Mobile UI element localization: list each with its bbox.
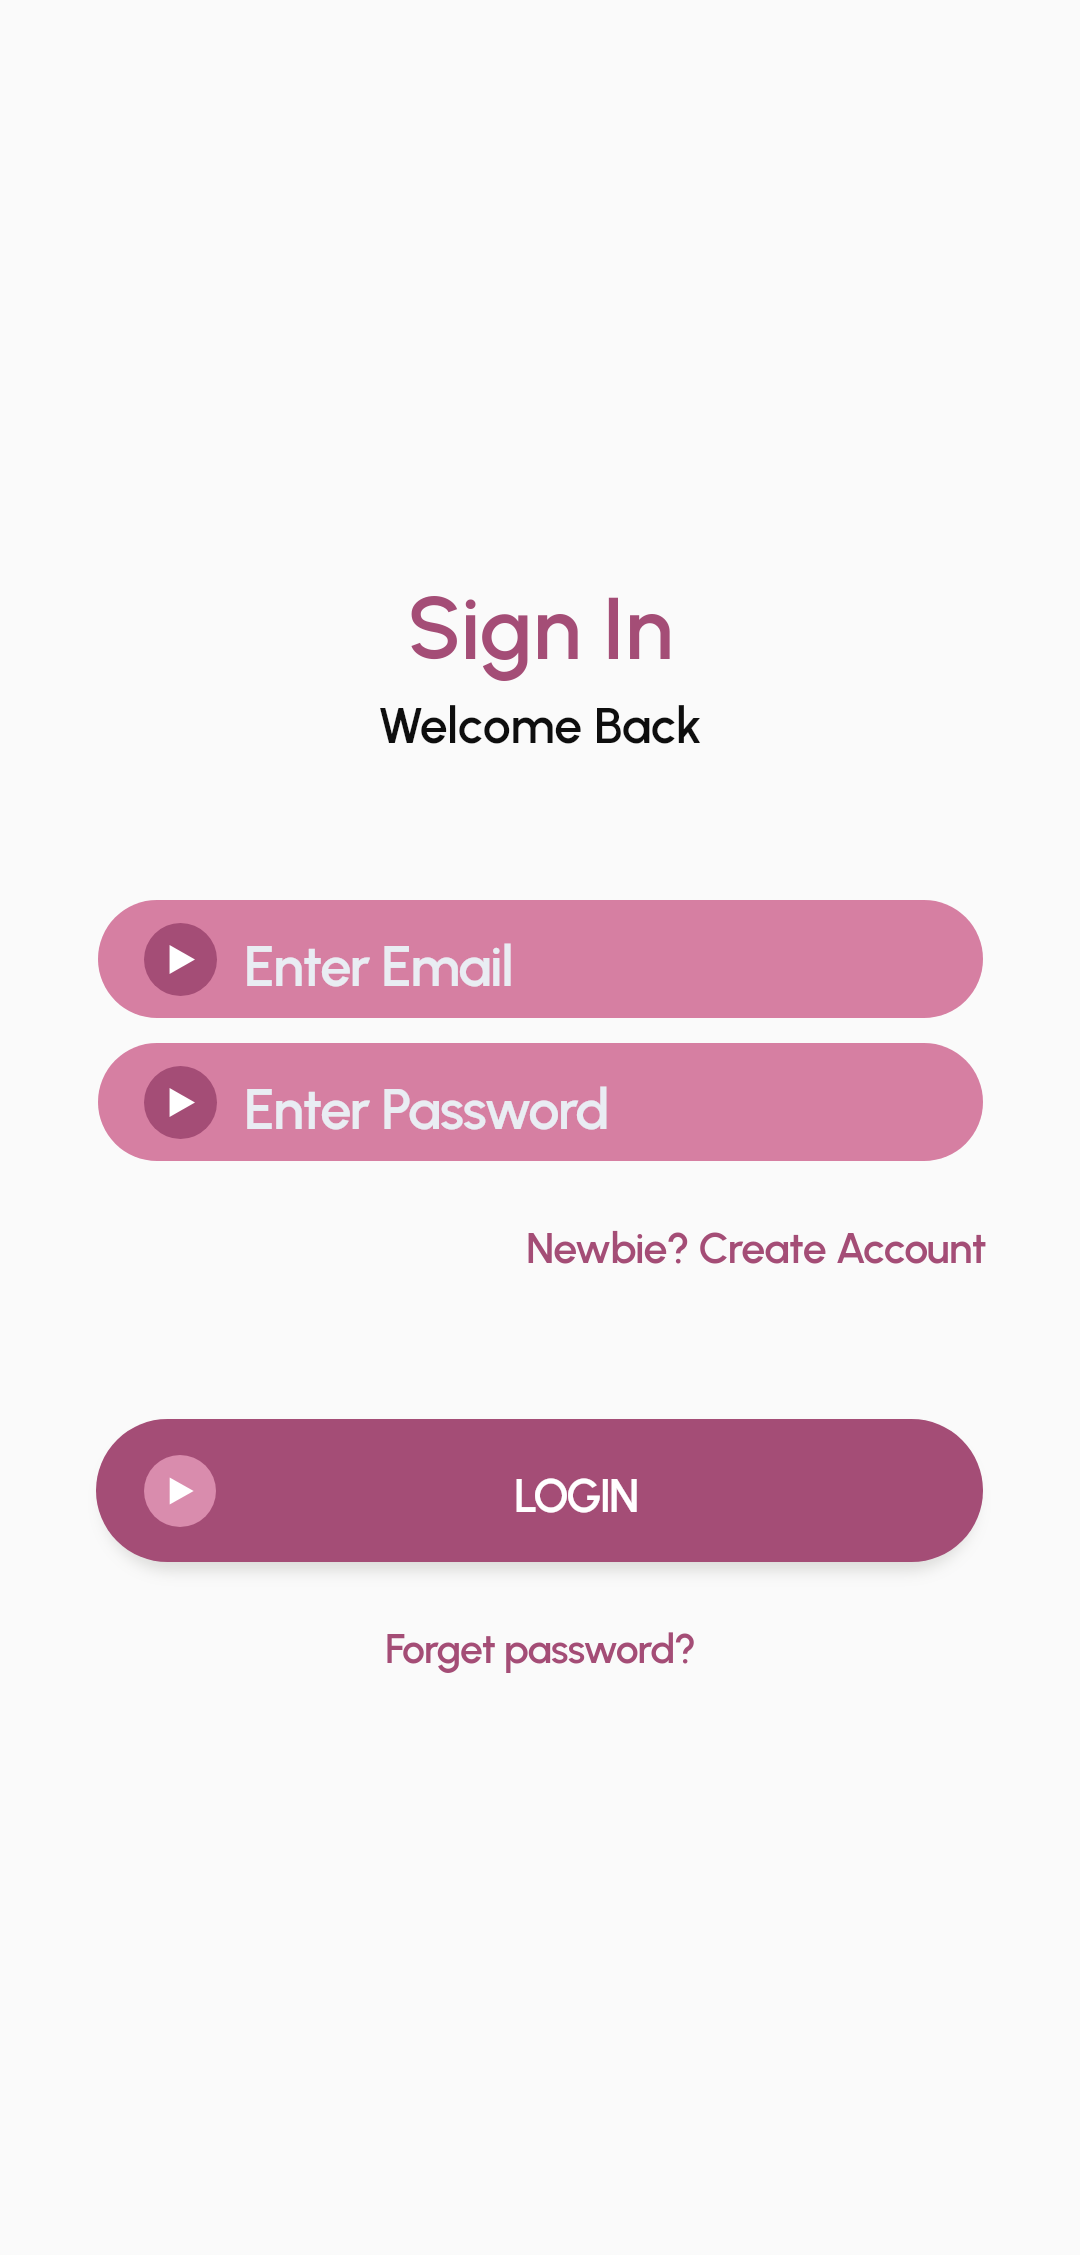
- button[interactable]: Go: [98, 900, 983, 1018]
- other: Go: [144, 1066, 217, 1139]
- staticText: Enter Email: [244, 933, 513, 1000]
- staticText: Enter Password: [244, 1076, 609, 1143]
- button[interactable]: Newbie? Create Account: [502, 1210, 1010, 1286]
- staticText: LOGIN: [514, 1468, 638, 1523]
- staticText: Forget password?: [385, 1624, 696, 1673]
- staticText: Sign In: [0, 575, 1080, 681]
- staticText: Newbie? Create Account: [526, 1222, 986, 1274]
- staticText: Welcome Back: [0, 695, 1080, 755]
- button[interactable]: Go: [98, 1043, 983, 1161]
- button[interactable]: Forget password?: [357, 1612, 724, 1685]
- button[interactable]: LOGIN: [96, 1419, 983, 1562]
- other: Go: [144, 923, 217, 996]
- other: Go: [144, 1455, 216, 1527]
